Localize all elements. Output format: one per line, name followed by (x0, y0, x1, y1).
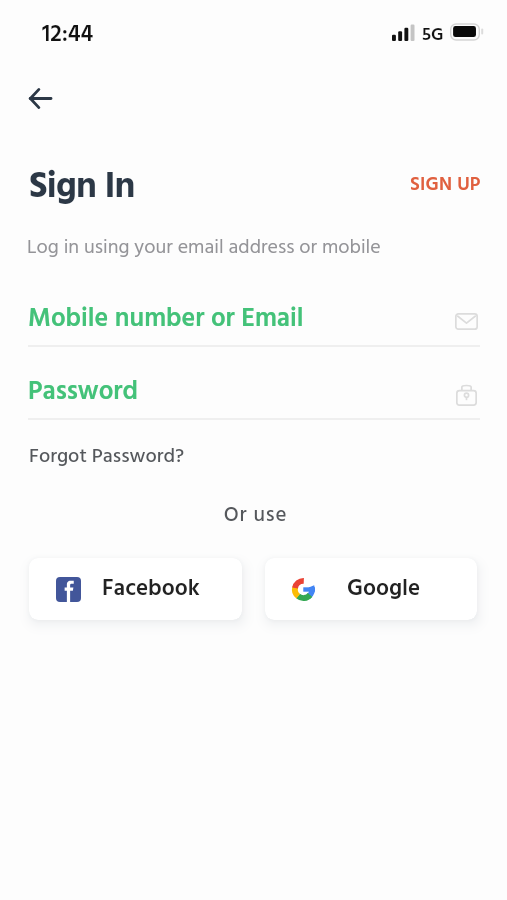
button[interactable]: SIGN UP (410, 170, 481, 200)
staticText: Sign In (29, 159, 135, 217)
staticText: Log in using your email address or mobil… (27, 232, 381, 264)
staticText: Forgot Password? (29, 441, 185, 473)
button[interactable]: Forgot Password? (29, 441, 185, 473)
button[interactable]: Password (28, 367, 480, 421)
staticText: 12:44 (42, 17, 94, 54)
staticText: SIGN UP (410, 170, 481, 200)
staticText: Mobile number or Email (28, 299, 304, 341)
staticText: Password (28, 372, 138, 414)
staticText: Facebook (102, 571, 200, 608)
button[interactable]: Facebook (29, 558, 242, 620)
button[interactable]: Back (17, 76, 62, 121)
button[interactable]: Google (265, 558, 477, 620)
staticText: Google (347, 571, 421, 608)
staticText: Or use (2, 499, 507, 533)
staticText: 5G (422, 21, 444, 50)
button[interactable]: Mobile number or Email (28, 294, 480, 348)
